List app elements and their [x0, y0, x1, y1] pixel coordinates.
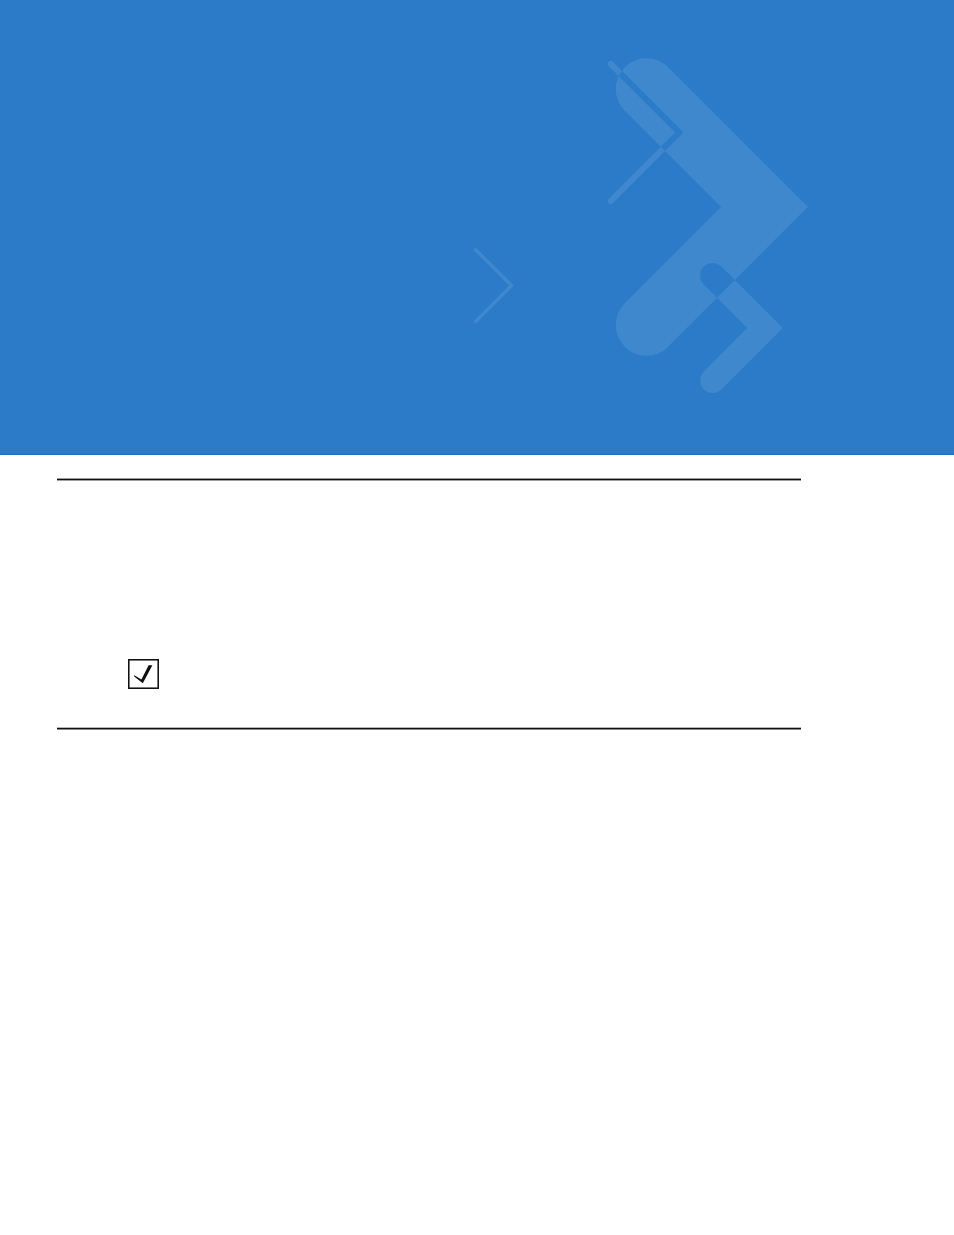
button[interactable]: Brand banner [0, 0, 954, 455]
button[interactable]: Checked checkbox [128, 659, 159, 689]
